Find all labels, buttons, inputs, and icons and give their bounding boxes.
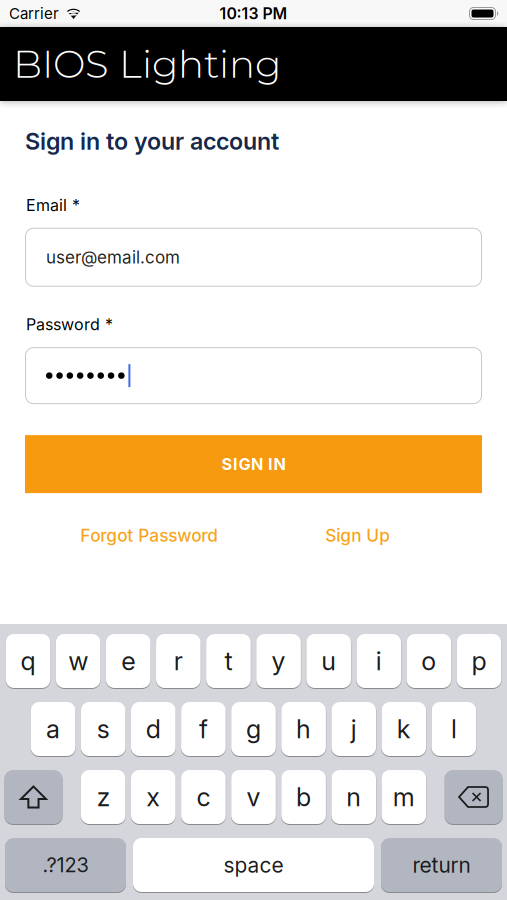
staticText: h <box>296 714 311 744</box>
button[interactable]: m <box>381 770 426 824</box>
button[interactable]: e <box>106 634 150 688</box>
staticText: a <box>46 714 60 744</box>
button[interactable]: o <box>407 634 451 688</box>
button[interactable]: u <box>306 634 351 688</box>
staticText: Forgot Password <box>80 525 218 546</box>
button[interactable]: j <box>331 702 376 756</box>
staticText: return <box>412 852 470 878</box>
staticText: o <box>421 646 436 676</box>
staticText: j <box>351 714 357 744</box>
staticText: space <box>223 852 283 878</box>
staticText: g <box>246 714 261 744</box>
staticText: e <box>121 646 135 676</box>
button[interactable]: Shift <box>5 770 62 824</box>
staticText: w <box>68 646 88 676</box>
staticText: s <box>97 714 110 744</box>
staticText: n <box>346 782 361 812</box>
button[interactable]: p <box>457 634 501 688</box>
button[interactable]: v <box>231 770 276 824</box>
button[interactable]: Forgot Password <box>45 525 253 546</box>
staticText: v <box>246 782 260 812</box>
button[interactable]: g <box>231 702 276 756</box>
button[interactable]: h <box>281 702 326 756</box>
staticText: BIOS Lighting <box>13 40 281 87</box>
staticText: q <box>20 646 35 676</box>
button[interactable]: .?123 <box>5 838 126 892</box>
button[interactable]: space <box>133 838 374 892</box>
button[interactable]: q <box>6 634 50 688</box>
button[interactable]: d <box>131 702 176 756</box>
staticText: f <box>199 714 208 744</box>
staticText: z <box>97 782 110 812</box>
button[interactable]: Sign Up <box>253 525 462 546</box>
button[interactable]: b <box>281 770 326 824</box>
staticText: t <box>224 646 232 676</box>
staticText: Carrier <box>9 4 59 23</box>
staticText: Sign Up <box>325 525 390 546</box>
button[interactable]: s <box>81 702 125 756</box>
button[interactable]: return <box>381 838 502 892</box>
button[interactable]: y <box>256 634 301 688</box>
button[interactable]: f <box>181 702 226 756</box>
staticText: m <box>393 782 415 812</box>
staticText: i <box>376 646 382 676</box>
staticText: y <box>271 646 285 676</box>
button[interactable]: a <box>31 702 75 756</box>
staticText: x <box>146 782 160 812</box>
staticText: b <box>296 782 311 812</box>
staticText: p <box>471 646 486 676</box>
staticText: user@email.com <box>46 247 180 268</box>
button[interactable]: user@email.com <box>25 228 482 287</box>
button[interactable]: SIGN IN <box>25 435 482 493</box>
staticText: Email * <box>26 195 80 215</box>
staticText: 10:13 PM <box>219 4 287 23</box>
button[interactable]: Password <box>25 347 482 404</box>
staticText: d <box>146 714 161 744</box>
button[interactable]: r <box>156 634 201 688</box>
button[interactable]: x <box>131 770 176 824</box>
staticText: Password * <box>26 315 113 334</box>
button[interactable]: n <box>331 770 376 824</box>
button[interactable]: i <box>356 634 401 688</box>
button[interactable]: t <box>206 634 251 688</box>
staticText: k <box>397 714 411 744</box>
button[interactable]: k <box>381 702 426 756</box>
staticText: Sign in to your account <box>25 127 279 155</box>
button[interactable]: c <box>181 770 226 824</box>
button[interactable]: Delete <box>445 770 502 824</box>
staticText: .?123 <box>42 853 88 877</box>
staticText: SIGN IN <box>221 454 285 474</box>
staticText: u <box>321 646 336 676</box>
staticText: c <box>196 782 210 812</box>
staticText: r <box>174 646 183 676</box>
staticText: l <box>451 714 457 744</box>
button[interactable]: l <box>432 702 476 756</box>
button[interactable]: z <box>81 770 125 824</box>
button[interactable]: w <box>56 634 100 688</box>
